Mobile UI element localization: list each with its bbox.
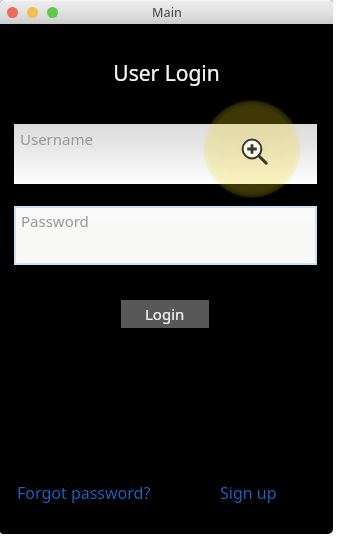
button[interactable]: Close window [7,7,18,18]
button[interactable]: Maximize window [47,7,58,18]
staticText: Password [21,211,89,231]
staticText: Username [20,129,93,149]
button[interactable]: Username [14,124,317,184]
staticText: Sign up [220,482,277,504]
button[interactable]: Forgot password? [13,478,155,508]
button[interactable]: Sign up [216,478,281,508]
button[interactable]: Login [121,300,209,328]
staticText: User Login [0,59,333,88]
button[interactable]: Password [14,206,317,265]
other: Zoom in pointer [0,0,333,534]
button[interactable]: Minimize window [27,7,38,18]
staticText: Main [152,4,182,21]
staticText: Forgot password? [17,482,151,504]
staticText: Login [145,304,185,324]
